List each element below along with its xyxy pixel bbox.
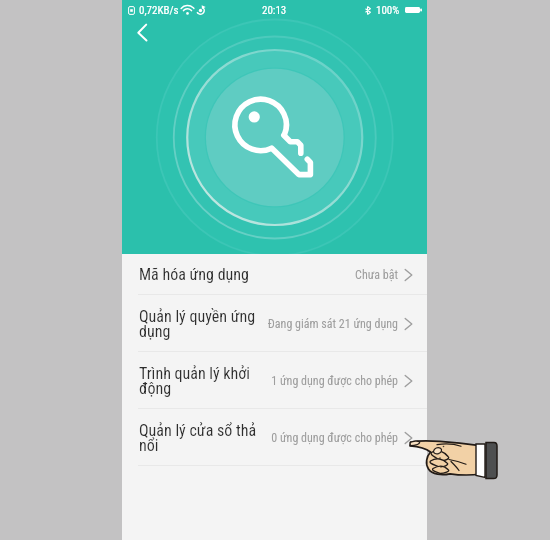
staticText: 0,72KB/s [139, 4, 179, 17]
staticText: Đang giám sát 21 ứng dụng [267, 317, 398, 331]
button[interactable]: Mã hóa ứng dụng [122, 254, 427, 295]
staticText: 0 ứng dụng được cho phép [271, 431, 398, 445]
staticText: Mã hóa ứng dụng [139, 265, 249, 284]
button[interactable]: Trình quản lý khởi động [122, 352, 427, 409]
staticText: Quản lý quyền ứng dụng [139, 307, 264, 341]
staticText: 1 ứng dụng được cho phép [271, 374, 398, 388]
staticText: 100% [376, 4, 400, 17]
button[interactable]: Back [128, 14, 164, 50]
staticText: Quản lý cửa sổ thả nổi [139, 421, 264, 455]
button[interactable]: Quản lý quyền ứng dụng [122, 295, 427, 352]
button[interactable]: Quản lý cửa sổ thả nổi [122, 409, 427, 466]
staticText: Trình quản lý khởi động [139, 364, 264, 398]
staticText: Chưa bật [355, 268, 398, 282]
staticText: 20:13 [262, 4, 287, 17]
